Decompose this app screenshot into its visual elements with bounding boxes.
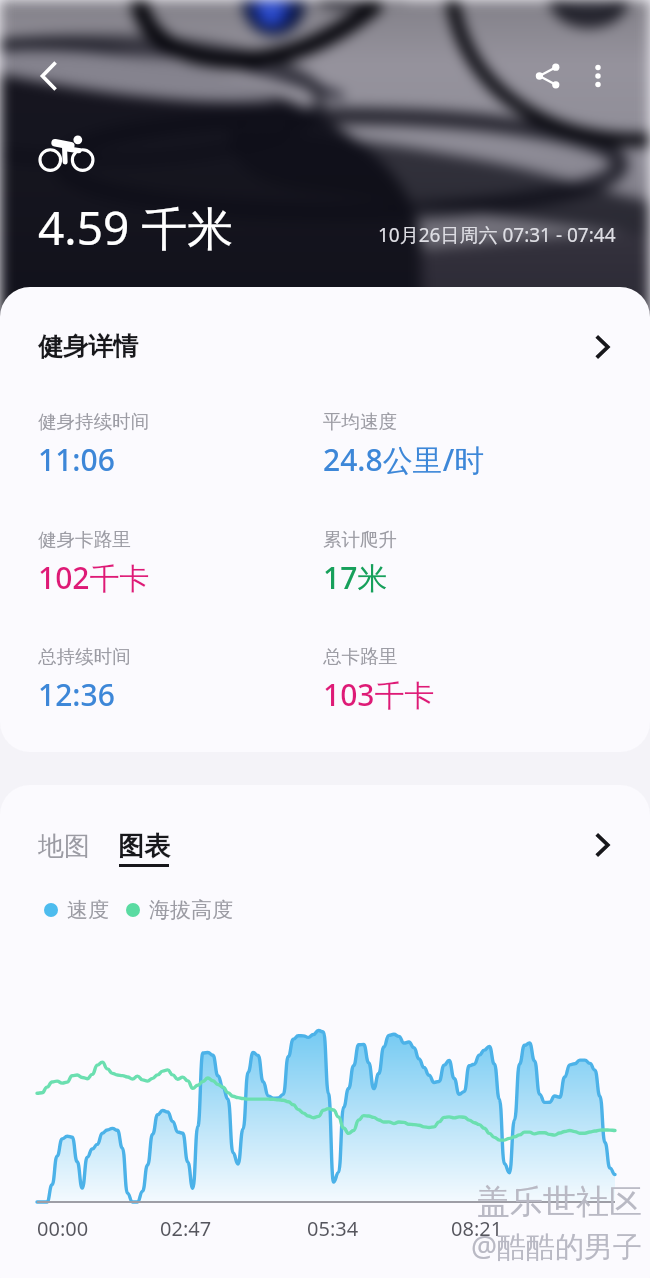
- staticText: 健身持续时间: [38, 410, 149, 433]
- staticText: @酷酷的男子: [471, 1226, 643, 1266]
- staticText: 海拔高度: [149, 897, 233, 923]
- staticText: 健身详情: [38, 331, 138, 362]
- staticText: 总卡路里: [323, 645, 397, 668]
- staticText: 累计爬升: [323, 528, 397, 551]
- staticText: 08:21: [451, 1215, 503, 1242]
- staticText: 12:36: [38, 674, 115, 715]
- button[interactable]: More options: [570, 48, 626, 104]
- staticText: 05:34: [307, 1215, 359, 1242]
- staticText: 02:47: [160, 1215, 212, 1242]
- staticText: 健身卡路里: [38, 528, 131, 551]
- staticText: 总持续时间: [38, 645, 131, 668]
- staticText: 地图: [38, 830, 90, 863]
- staticText: 平均速度: [323, 410, 397, 433]
- staticText: 00:00: [37, 1215, 89, 1242]
- staticText: 102千卡: [38, 557, 150, 598]
- staticText: 17米: [323, 557, 388, 598]
- button[interactable]: Back: [21, 48, 77, 104]
- button[interactable]: 健身详情: [0, 287, 650, 392]
- button[interactable]: 地图: [38, 830, 90, 863]
- button[interactable]: 图表: [118, 830, 170, 867]
- staticText: 盖乐世社区: [477, 1181, 642, 1223]
- staticText: 11:06: [38, 439, 115, 480]
- staticText: 103千卡: [323, 674, 435, 715]
- staticText: 速度: [67, 897, 109, 923]
- staticText: 24.8公里/时: [323, 439, 485, 480]
- staticText: 4.59 千米: [38, 196, 234, 259]
- button[interactable]: Share: [520, 48, 576, 104]
- staticText: 10月26日周六 07:31 - 07:44: [378, 222, 616, 248]
- staticText: 图表: [118, 830, 170, 863]
